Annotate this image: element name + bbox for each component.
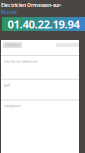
staticText: 01.40.22.19.94: [7, 16, 79, 32]
staticText: interphone: [4, 103, 21, 108]
staticText: electricien: [5, 43, 20, 47]
staticText: Electricien Ormesson-sur-: [1, 2, 62, 8]
staticText: tarif: [4, 83, 10, 87]
button[interactable]: 01.40.22.19.94: [2, 17, 85, 31]
staticText: electricien ormesson: [4, 59, 38, 64]
staticText: Marne: [1, 9, 17, 15]
